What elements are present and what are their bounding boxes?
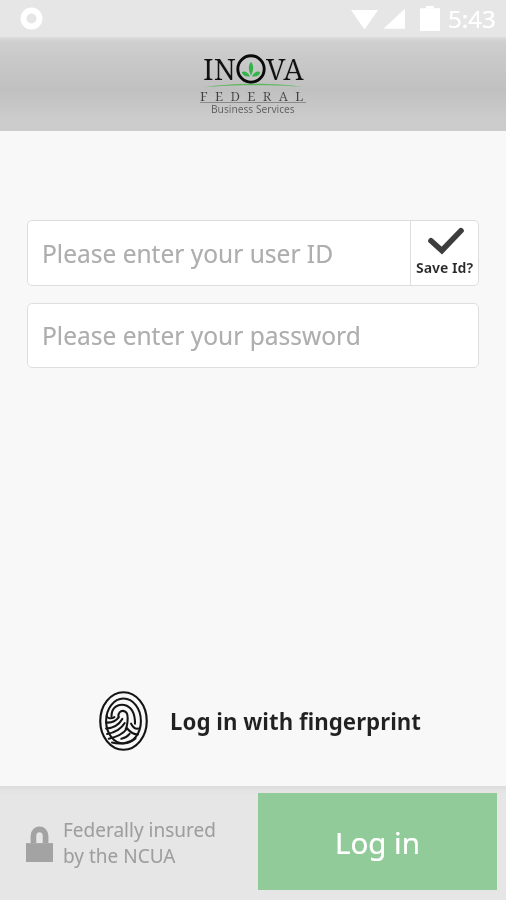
staticText: 5:43: [448, 2, 496, 35]
button[interactable]: Save Id: [411, 220, 479, 286]
staticText: Please enter your user ID: [42, 237, 334, 270]
staticText: F E D E R A L: [200, 87, 306, 105]
other: Notification: [20, 7, 43, 30]
button[interactable]: Please enter your user ID: [27, 220, 410, 286]
staticText: VA: [266, 49, 304, 88]
staticText: Business Services: [211, 102, 295, 116]
button[interactable]: Log in: [258, 793, 497, 890]
staticText: Save Id?: [416, 258, 474, 277]
button[interactable]: Log in with fingerprint: [99, 691, 421, 751]
staticText: Federally insured: [63, 817, 216, 843]
other: Save Id: [429, 229, 462, 257]
staticText: IN: [203, 49, 236, 88]
staticText: Log in: [335, 822, 420, 862]
other: Log in with fingerprint: [99, 691, 148, 751]
other: Secure: [26, 825, 53, 862]
button[interactable]: Please enter your password: [27, 303, 479, 368]
staticText: by the NCUA: [63, 843, 176, 869]
staticText: Log in with fingerprint: [170, 706, 421, 736]
staticText: Please enter your password: [42, 319, 361, 352]
